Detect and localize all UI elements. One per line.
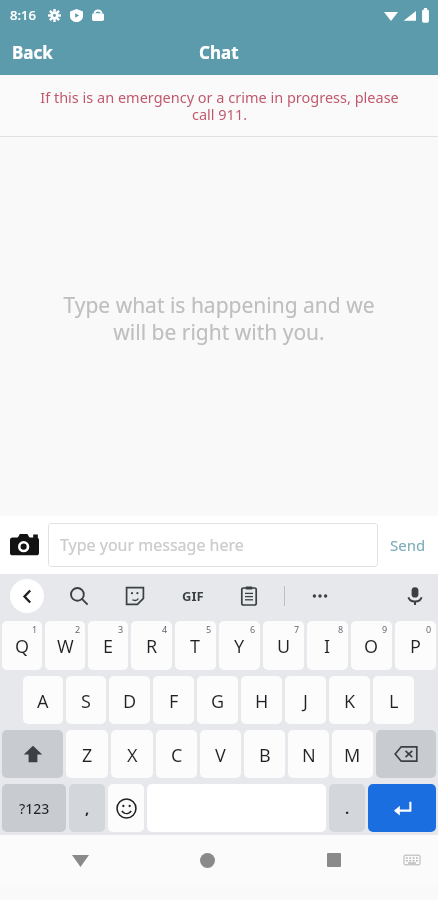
- button[interactable]: Stickers: [122, 583, 148, 609]
- button[interactable]: T: [175, 621, 216, 670]
- staticText: T: [190, 634, 201, 659]
- button[interactable]: E: [88, 621, 128, 670]
- button[interactable]: More options: [307, 583, 333, 609]
- staticText: X: [127, 743, 138, 768]
- staticText: Type what is happening and we will be ri…: [63, 291, 375, 346]
- staticText: K: [344, 689, 356, 714]
- button[interactable]: Home: [184, 837, 230, 883]
- staticText: ?123: [19, 799, 50, 818]
- staticText: G: [211, 689, 225, 714]
- staticText: B: [259, 743, 271, 768]
- button[interactable]: Emoji: [108, 784, 144, 832]
- button[interactable]: Symbols: [2, 784, 66, 832]
- staticText: ,: [85, 798, 90, 818]
- staticText: Type your message here: [60, 534, 244, 556]
- staticText: If this is an emergency or a crime in pr…: [40, 87, 399, 124]
- button[interactable]: F: [153, 676, 194, 724]
- button[interactable]: Type your message here: [48, 523, 378, 567]
- button[interactable]: Camera: [0, 521, 48, 569]
- staticText: E: [103, 634, 114, 659]
- staticText: Q: [15, 634, 30, 659]
- button[interactable]: Search: [66, 583, 92, 609]
- staticText: O: [364, 634, 379, 659]
- button[interactable]: A: [23, 676, 63, 724]
- button[interactable]: O: [351, 621, 392, 670]
- staticText: 6: [250, 623, 256, 635]
- button[interactable]: G: [197, 676, 238, 724]
- button[interactable]: V: [200, 730, 241, 778]
- button[interactable]: P: [395, 621, 436, 670]
- staticText: Y: [234, 634, 245, 659]
- button[interactable]: Recents: [311, 837, 357, 883]
- staticText: R: [146, 634, 158, 659]
- staticText: I: [324, 634, 331, 659]
- staticText: W: [57, 634, 74, 659]
- button[interactable]: Voice input: [402, 583, 428, 609]
- staticText: F: [169, 689, 179, 714]
- button[interactable]: Shift: [2, 730, 63, 778]
- button[interactable]: J: [285, 676, 326, 724]
- button[interactable]: Clipboard: [236, 583, 262, 609]
- staticText: Chat: [199, 41, 239, 64]
- button[interactable]: Z: [66, 730, 108, 778]
- staticText: 9: [382, 623, 388, 635]
- button[interactable]: Y: [219, 621, 260, 670]
- button[interactable]: L: [373, 676, 414, 724]
- button[interactable]: C: [156, 730, 197, 778]
- staticText: Z: [82, 743, 93, 768]
- button[interactable]: D: [109, 676, 150, 724]
- staticText: Back: [12, 41, 53, 64]
- button[interactable]: U: [263, 621, 304, 670]
- button[interactable]: Send: [378, 525, 438, 565]
- button[interactable]: Comma: [69, 784, 105, 832]
- button[interactable]: Back: [57, 837, 103, 883]
- button[interactable]: X: [111, 730, 153, 778]
- button[interactable]: GIF: [178, 583, 208, 609]
- button[interactable]: Enter: [368, 784, 436, 832]
- staticText: M: [344, 743, 361, 768]
- button[interactable]: S: [66, 676, 106, 724]
- staticText: H: [255, 689, 269, 714]
- staticText: D: [123, 689, 137, 714]
- staticText: P: [410, 634, 421, 659]
- staticText: C: [171, 743, 183, 768]
- staticText: .: [345, 798, 350, 818]
- staticText: 1: [32, 623, 38, 635]
- button[interactable]: I: [307, 621, 348, 670]
- staticText: 8: [338, 623, 344, 635]
- staticText: 8:16: [10, 6, 36, 24]
- staticText: GIF: [182, 587, 204, 605]
- staticText: U: [277, 634, 291, 659]
- staticText: V: [215, 743, 226, 768]
- button[interactable]: Switch keyboard: [392, 840, 432, 880]
- button[interactable]: Q: [2, 621, 42, 670]
- staticText: S: [81, 689, 91, 714]
- staticText: 0: [426, 623, 432, 635]
- staticText: 4: [162, 623, 168, 635]
- button[interactable]: W: [45, 621, 85, 670]
- staticText: 5: [206, 623, 212, 635]
- staticText: J: [303, 689, 308, 714]
- button[interactable]: H: [241, 676, 282, 724]
- staticText: 2: [75, 623, 81, 635]
- staticText: 7: [294, 623, 300, 635]
- button[interactable]: Back: [10, 579, 44, 613]
- staticText: 3: [118, 623, 124, 635]
- staticText: A: [37, 689, 49, 714]
- button[interactable]: K: [329, 676, 370, 724]
- button[interactable]: Period: [329, 784, 365, 832]
- button[interactable]: M: [332, 730, 373, 778]
- staticText: N: [302, 743, 316, 768]
- button[interactable]: Back: [0, 33, 65, 72]
- button[interactable]: R: [131, 621, 172, 670]
- staticText: L: [389, 689, 399, 714]
- staticText: Send: [390, 535, 426, 555]
- button[interactable]: N: [288, 730, 329, 778]
- button[interactable]: B: [244, 730, 285, 778]
- button[interactable]: Backspace: [376, 730, 436, 778]
